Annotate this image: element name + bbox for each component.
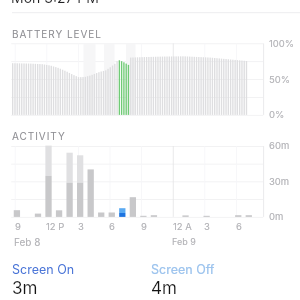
staticText: 12 A: [173, 221, 192, 232]
staticText: 0m: [269, 211, 284, 222]
staticText: BATTERY LEVEL: [12, 28, 102, 40]
staticText: 12 P: [46, 221, 65, 232]
staticText: 3: [204, 221, 210, 232]
staticText: ACTIVITY: [12, 130, 66, 142]
staticText: 4m: [151, 278, 177, 299]
staticText: Screen On: [12, 262, 75, 277]
staticText: 30m: [269, 176, 290, 187]
staticText: 60m: [269, 140, 290, 151]
button[interactable]: Screen Off: [151, 262, 215, 277]
staticText: Screen Off: [151, 262, 215, 277]
staticText: 3m: [12, 278, 38, 299]
button[interactable]: Screen On: [12, 262, 75, 277]
staticText: 9: [141, 221, 147, 232]
staticText: Feb 8: [14, 236, 41, 248]
staticText: 6: [109, 221, 115, 232]
staticText: 50%: [269, 74, 291, 85]
staticText: 100%: [269, 38, 295, 49]
staticText: 0%: [269, 109, 285, 120]
staticText: Mon 3:27 PM: [11, 0, 99, 6]
staticText: 6: [236, 221, 242, 232]
staticText: 3: [78, 221, 84, 232]
staticText: 9: [15, 221, 21, 232]
staticText: Feb 9: [172, 236, 196, 247]
